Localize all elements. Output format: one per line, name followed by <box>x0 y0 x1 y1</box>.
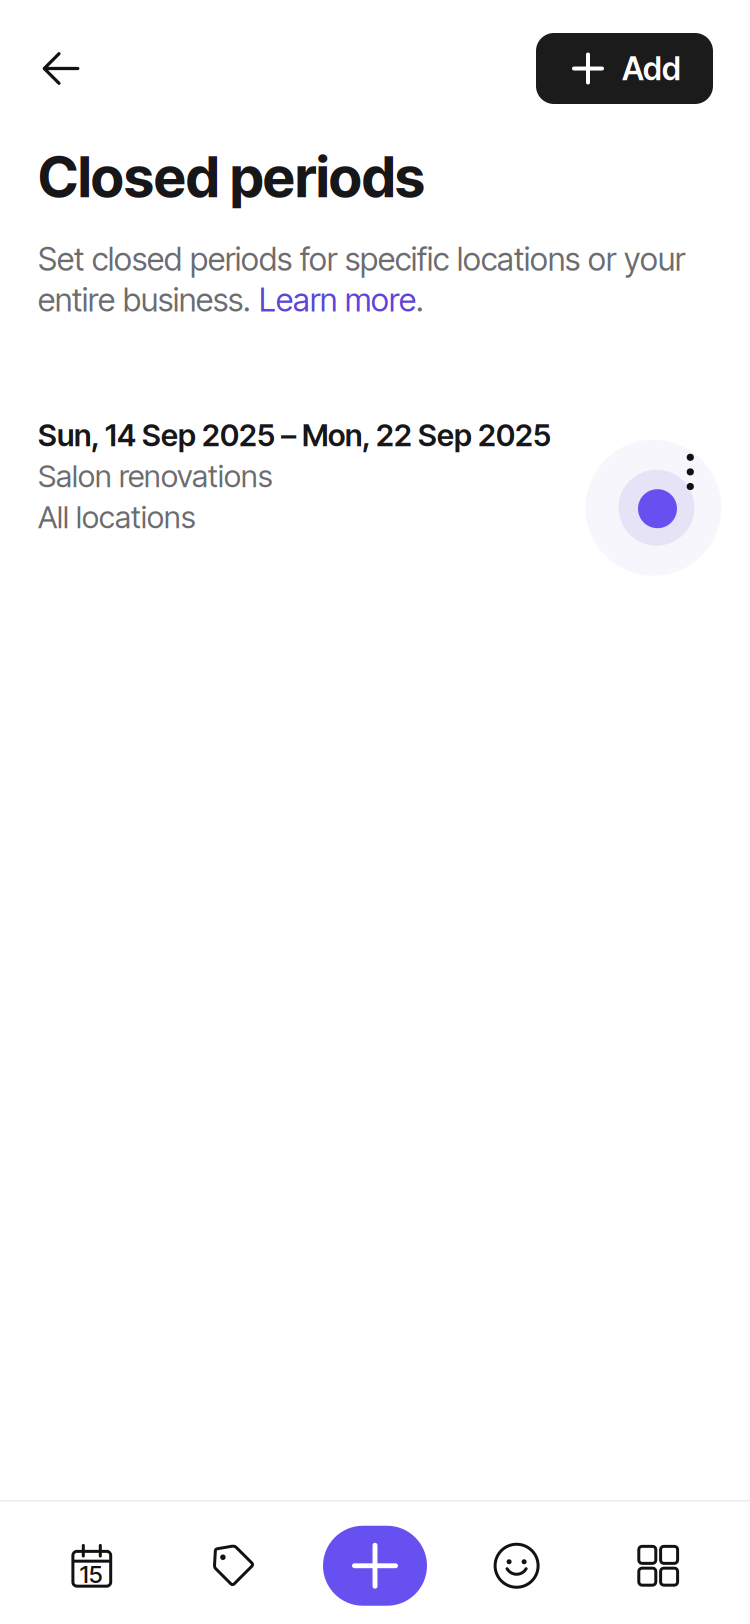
button[interactable]: More <box>587 1545 729 1587</box>
staticText: All locations <box>38 499 196 536</box>
staticText: Closed periods <box>38 143 425 211</box>
staticText: . <box>416 280 424 319</box>
button[interactable]: Sales <box>163 1544 304 1588</box>
staticText: Learn more <box>259 280 416 319</box>
button[interactable]: Sun, 14 Sep 2025 – Mon, 22 Sep 2025 <box>0 408 750 544</box>
staticText: Salon renovations <box>38 457 273 495</box>
staticText: 15 <box>80 1560 103 1589</box>
button[interactable]: Back <box>21 33 101 104</box>
staticText: Add <box>622 49 681 88</box>
button[interactable]: Add <box>536 33 713 104</box>
staticText: entire business. <box>38 280 259 319</box>
button[interactable]: Calendar <box>21 1544 163 1588</box>
button[interactable]: Clients <box>446 1544 587 1588</box>
staticText: Sun, 14 Sep 2025 – Mon, 22 Sep 2025 <box>38 417 551 453</box>
button[interactable]: Learn more <box>259 280 416 319</box>
staticText: Set closed periods for specific location… <box>38 240 685 278</box>
button[interactable]: Add <box>304 1526 446 1606</box>
